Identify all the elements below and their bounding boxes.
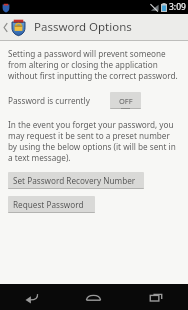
staticText: In the event you forget your password, y… bbox=[8, 119, 180, 163]
staticText: Setting a password will prevent someone … bbox=[8, 48, 180, 81]
button[interactable]: Recent apps bbox=[125, 284, 188, 310]
staticText: Password is currently bbox=[8, 95, 90, 106]
staticText: Password Options bbox=[34, 19, 132, 35]
staticText: OFF bbox=[119, 96, 133, 106]
staticText: 3:09 bbox=[169, 1, 186, 13]
staticText: Set Password Recovery Number bbox=[13, 175, 136, 186]
button[interactable]: Back bbox=[0, 284, 62, 310]
button[interactable]: Navigate up bbox=[0, 14, 29, 40]
button[interactable]: Set Password Recovery Number bbox=[8, 172, 144, 189]
button[interactable]: OFF bbox=[110, 92, 141, 109]
button[interactable]: Home bbox=[62, 284, 125, 310]
button[interactable]: Request Password bbox=[8, 196, 95, 213]
staticText: Request Password bbox=[13, 199, 84, 210]
